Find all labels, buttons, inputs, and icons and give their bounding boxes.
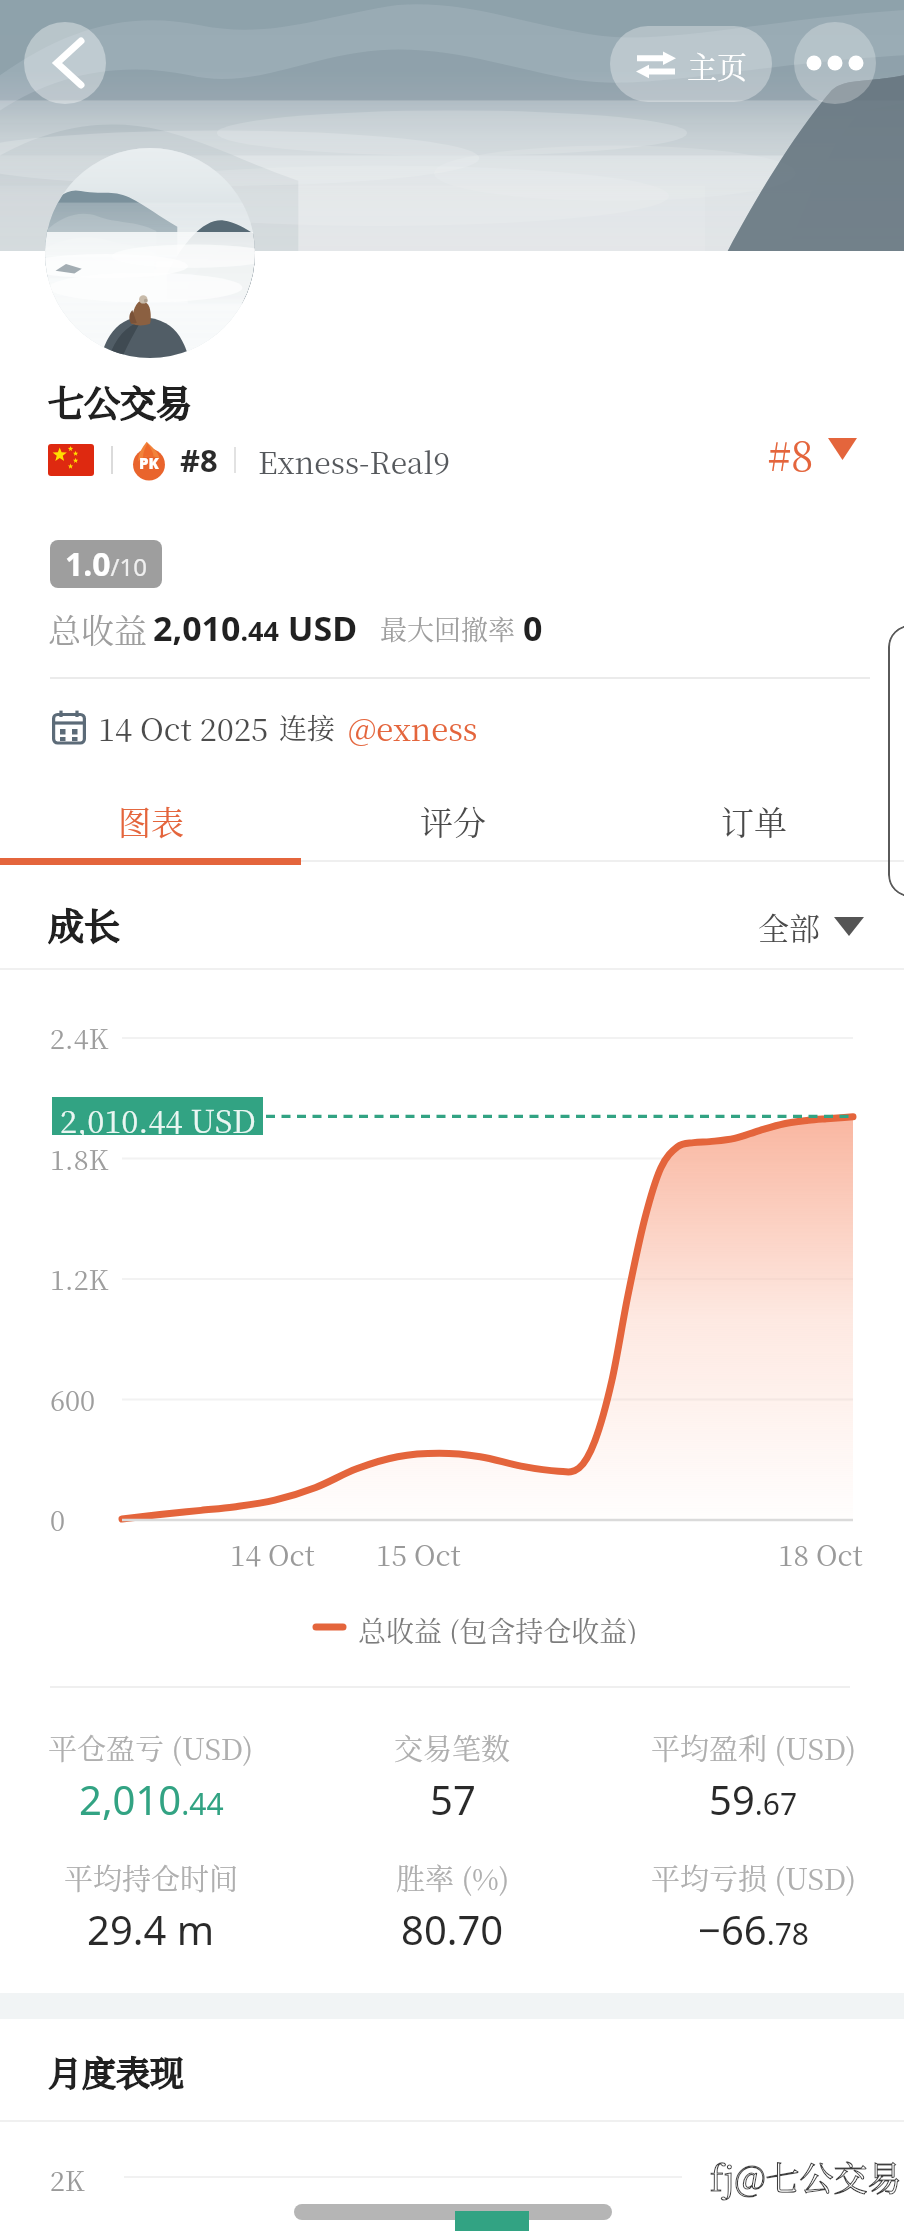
staticText: 80.70 — [401, 1902, 504, 1956]
staticText: #8 — [768, 425, 814, 473]
staticText: 七公交易 — [48, 376, 193, 428]
staticText: 0 — [50, 1500, 66, 1539]
button[interactable]: #8 — [768, 425, 857, 473]
staticText: 14 Oct 2025 — [98, 705, 269, 750]
staticText: 订单 — [721, 797, 787, 844]
staticText: 18 Oct — [778, 1534, 863, 1574]
staticText: 成长 — [48, 899, 121, 951]
staticText: 2K — [50, 2160, 85, 2199]
staticText: 2,010.44 USD — [60, 1097, 256, 1135]
staticText: 总收益 — [48, 605, 147, 652]
button[interactable]: 胜率 (%) — [302, 1857, 603, 1956]
staticText: 14 Oct — [230, 1534, 315, 1574]
staticText: 平均持仓时间 — [64, 1857, 239, 1899]
staticText: fj@七公交易 — [710, 2152, 902, 2201]
staticText: 图表 — [118, 797, 184, 844]
staticText: 连接 — [279, 707, 336, 747]
staticText: 平仓盈亏 (USD) — [48, 1727, 254, 1769]
staticText: 2.4K — [50, 1018, 109, 1057]
staticText: 月度表现 — [48, 2047, 184, 2096]
staticText: Exness-Real9 — [258, 439, 451, 482]
staticText: 最大回撤率 — [380, 609, 515, 648]
staticText: 15 Oct — [376, 1534, 461, 1574]
staticText: 交易笔数 — [394, 1727, 511, 1769]
staticText: #8 — [180, 439, 218, 481]
staticText: 平均盈利 (USD) — [651, 1727, 857, 1769]
staticText: 0 — [523, 605, 543, 651]
staticText: 29.4 m — [87, 1902, 215, 1956]
button[interactable]: 评分 — [302, 780, 603, 860]
button[interactable]: 全部 — [758, 903, 864, 949]
button[interactable]: 平仓盈亏 (USD) — [0, 1727, 302, 1826]
staticText: 胜率 (%) — [396, 1857, 510, 1899]
staticText: 总收益 (包含持仓收益) — [358, 1610, 638, 1644]
button[interactable]: 主页 — [610, 26, 772, 102]
staticText: 月度表现 — [48, 2047, 184, 2096]
button[interactable]: Profile avatar — [45, 148, 255, 358]
staticText: 600 — [50, 1380, 96, 1419]
staticText: 主页 — [687, 43, 747, 86]
staticText: 57 — [430, 1772, 476, 1826]
button[interactable]: 交易笔数 — [302, 1727, 603, 1826]
button[interactable]: More options — [794, 22, 876, 104]
button[interactable]: 订单 — [603, 780, 904, 860]
button[interactable]: Side panel handle — [888, 625, 904, 897]
button[interactable]: 平均亏损 (USD) — [603, 1857, 904, 1956]
button[interactable]: 平均持仓时间 — [0, 1857, 302, 1956]
staticText: −66.78 — [698, 1902, 809, 1956]
button[interactable]: Back — [24, 22, 106, 104]
staticText: 平均亏损 (USD) — [651, 1857, 857, 1899]
staticText: 全部 — [758, 904, 820, 949]
staticText: 1.8K — [50, 1139, 109, 1178]
button[interactable]: 1.0/10 — [50, 540, 162, 588]
staticText: 2,010.44 — [79, 1772, 224, 1826]
button[interactable]: @exness — [348, 705, 478, 750]
staticText: 七公交易 — [48, 376, 193, 428]
staticText: PK — [139, 453, 159, 473]
button[interactable]: 平均盈利 (USD) — [603, 1727, 904, 1826]
staticText: 59.67 — [709, 1772, 798, 1826]
staticText: 1.2K — [50, 1259, 109, 1298]
staticText: 成长 — [48, 899, 121, 951]
staticText: 评分 — [420, 797, 486, 844]
staticText: 2,010.44 USD — [153, 605, 358, 651]
button[interactable]: 图表 — [0, 780, 302, 860]
staticText: 1.0/10 — [65, 542, 147, 586]
